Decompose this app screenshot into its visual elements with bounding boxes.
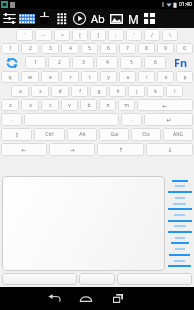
button[interactable]: [ [72, 29, 88, 41]
button[interactable]: \ [162, 29, 178, 41]
button[interactable]: w [21, 71, 39, 83]
button[interactable]: 1 [1, 43, 19, 54]
button[interactable]: = [54, 29, 70, 41]
button[interactable]: h [109, 85, 126, 97]
button[interactable]: Numeric keypad [53, 9, 70, 28]
button[interactable]: Ctx [131, 128, 161, 141]
staticText: 3 [82, 59, 85, 66]
button[interactable]: Left click [2, 273, 77, 285]
button[interactable]: ⇧ [1, 128, 32, 141]
staticText: Ctrl [45, 131, 54, 138]
button[interactable]: o [157, 71, 174, 83]
button[interactable]: f [71, 85, 88, 97]
button[interactable]: Ab [88, 9, 107, 28]
button[interactable]: Image [107, 9, 125, 28]
button[interactable]: Home [70, 287, 102, 310]
button[interactable]: y [100, 71, 117, 83]
button[interactable]: 7 [119, 43, 136, 54]
button[interactable]: ↵ [144, 113, 193, 126]
button[interactable]: ] [90, 29, 106, 41]
button[interactable]: , [1, 113, 22, 126]
button[interactable]: 3 [72, 56, 94, 69]
button[interactable]: / [144, 29, 160, 41]
staticText: 5 [88, 45, 91, 52]
button[interactable]: 0 [176, 43, 193, 54]
button[interactable]: 9 [157, 43, 174, 54]
button[interactable]: n [99, 99, 116, 111]
staticText: Alt [79, 131, 86, 138]
button[interactable]: Alt [67, 128, 97, 141]
button[interactable]: ; [108, 29, 124, 41]
button[interactable]: d [51, 85, 69, 97]
button[interactable]: Recent apps [102, 287, 134, 310]
button[interactable]: 2 [21, 43, 39, 54]
button[interactable]: Fn [167, 55, 194, 70]
button[interactable]: ↑ [97, 143, 144, 156]
button[interactable]: z [1, 99, 19, 111]
button[interactable] [24, 113, 119, 126]
button[interactable]: Settings sliders [1, 9, 18, 28]
button[interactable]: q [1, 71, 19, 83]
staticText: 2 [29, 45, 32, 52]
button[interactable]: 6 [100, 43, 117, 54]
button[interactable]: Scroll strip [167, 176, 192, 271]
button[interactable]: ← [137, 99, 193, 111]
button[interactable]: M [125, 9, 141, 28]
button[interactable]: t [81, 71, 98, 83]
button[interactable]: Back [38, 287, 70, 310]
button[interactable]: Mouse [36, 9, 53, 28]
button[interactable]: . [121, 113, 142, 126]
button[interactable]: e [41, 71, 59, 83]
button[interactable]: ← [1, 143, 47, 156]
button[interactable]: → [49, 143, 95, 156]
button[interactable]: j [128, 85, 145, 97]
button[interactable]: c [41, 99, 59, 111]
button[interactable]: 1 [25, 56, 46, 69]
button[interactable]: ' [126, 29, 142, 41]
staticText: . [131, 116, 133, 123]
button[interactable]: 4 [61, 43, 79, 54]
staticText: t [89, 74, 91, 81]
staticText: 1 [9, 45, 12, 52]
button[interactable]: 5 [120, 56, 142, 69]
button[interactable]: g [90, 85, 107, 97]
staticText: / [151, 32, 153, 39]
button[interactable]: Ctrl [34, 128, 65, 141]
button[interactable]: Gui [99, 128, 129, 141]
button[interactable]: m [118, 99, 135, 111]
button[interactable]: Trackpad [2, 176, 165, 271]
button[interactable]: AltG [163, 128, 193, 141]
button[interactable]: u [119, 71, 136, 83]
button[interactable]: v [61, 99, 78, 111]
button[interactable]: i [138, 71, 155, 83]
button[interactable]: s [31, 85, 49, 97]
button[interactable]: Middle click [79, 273, 115, 285]
button[interactable]: Right click [117, 273, 192, 285]
button[interactable]: 5 [81, 43, 98, 54]
button[interactable]: 6 [144, 56, 166, 69]
button[interactable]: r [61, 71, 79, 83]
button[interactable]: 4 [96, 56, 118, 69]
button[interactable]: a [11, 85, 29, 97]
staticText: i [146, 74, 148, 81]
staticText: 4 [69, 45, 72, 52]
button[interactable]: k [147, 85, 164, 97]
button[interactable]: ` [16, 29, 33, 41]
button[interactable]: Apps [141, 9, 157, 28]
button[interactable]: p [176, 71, 193, 83]
button[interactable]: Refresh [0, 55, 24, 70]
button[interactable]: ~ [35, 29, 52, 41]
staticText: , [11, 116, 13, 123]
staticText: ; [115, 32, 117, 39]
staticText: y [107, 74, 110, 81]
staticText: ← [21, 146, 27, 153]
button[interactable]: 3 [41, 43, 59, 54]
button[interactable]: Play [70, 9, 88, 28]
button[interactable]: Keyboard [18, 9, 36, 28]
button[interactable]: 2 [48, 56, 70, 69]
button[interactable]: l [166, 85, 183, 97]
button[interactable]: x [21, 99, 39, 111]
button[interactable]: 8 [138, 43, 155, 54]
button[interactable]: b [80, 99, 97, 111]
button[interactable]: ↓ [146, 143, 193, 156]
